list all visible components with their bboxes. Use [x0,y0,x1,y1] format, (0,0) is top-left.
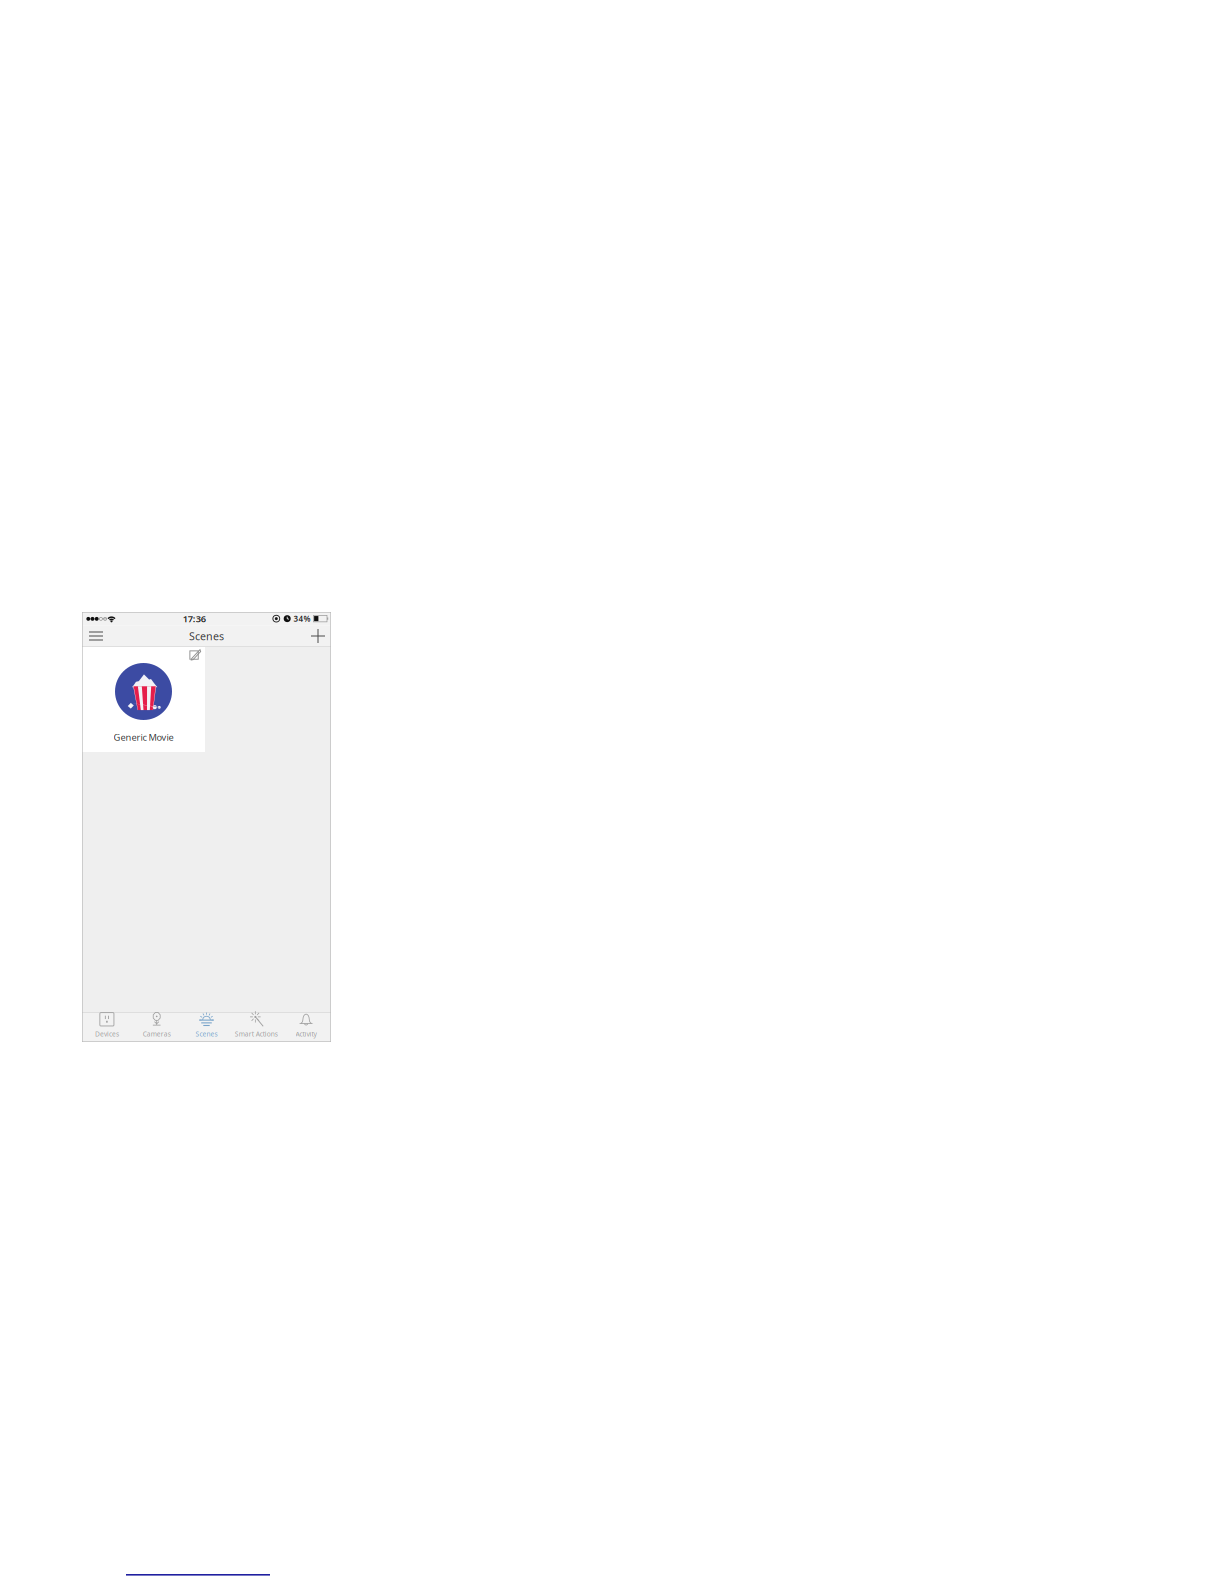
staticText: Activity [296,1030,317,1038]
button[interactable]: Devices [82,1013,132,1042]
button[interactable]: Add scene [305,625,331,647]
button[interactable]: Scenes [182,1013,231,1042]
staticText: Scenes [189,629,224,643]
staticText: Scenes [195,1030,217,1038]
staticText: 34% [293,613,310,624]
staticText: 17:36 [183,613,206,625]
staticText: Smart Actions [235,1030,278,1038]
button[interactable]: Smart Actions [231,1013,281,1042]
staticText: Cameras [143,1030,171,1038]
button[interactable]: Cameras [132,1013,182,1042]
button[interactable]: Generic Movie [82,647,205,752]
staticText: Devices [95,1030,119,1038]
staticText: Generic Movie [113,731,173,743]
button[interactable]: Activity [281,1013,331,1042]
button[interactable]: Menu [82,625,110,647]
